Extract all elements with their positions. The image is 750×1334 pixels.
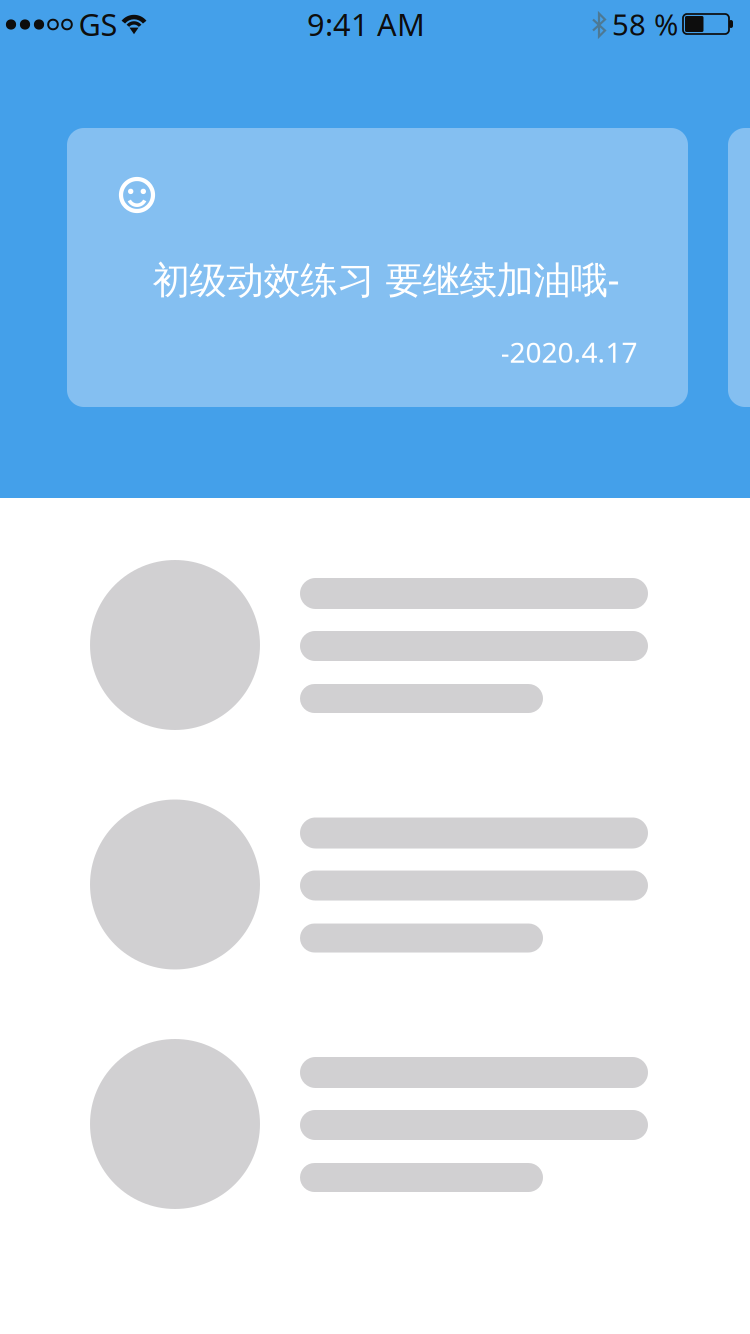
button[interactable]: 初级动效练习 要继续加油哦- <box>728 128 750 407</box>
staticText: -2020.4.17 <box>500 333 637 371</box>
staticText: 58 % <box>612 4 678 43</box>
button[interactable]: Loading item <box>90 799 650 969</box>
staticText: 初级动效练习 要继续加油哦- <box>152 254 619 304</box>
button[interactable]: 初级动效练习 要继续加油哦- <box>67 128 688 407</box>
staticText: 9:41 AM <box>307 4 425 44</box>
button[interactable]: Loading item <box>90 1039 650 1209</box>
button[interactable]: Loading item <box>90 560 650 730</box>
staticText: GS <box>78 4 117 44</box>
